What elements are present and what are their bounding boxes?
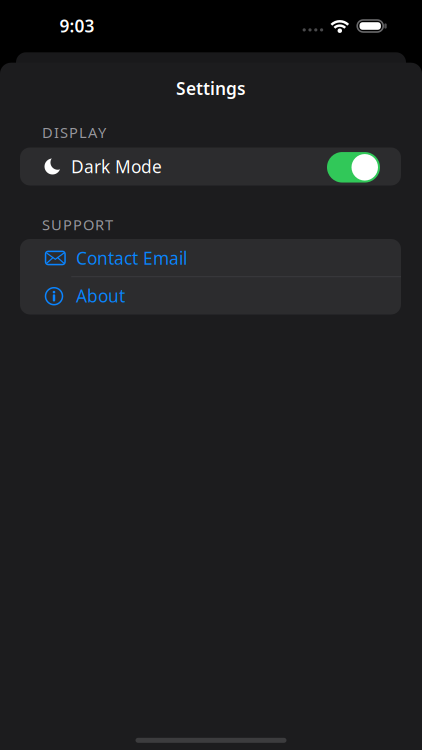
staticText: 9:03 bbox=[59, 14, 94, 37]
button[interactable]: About bbox=[20, 277, 401, 314]
button[interactable]: Contact Email bbox=[20, 239, 401, 277]
staticText: S U P P O R T bbox=[42, 215, 113, 234]
staticText: About bbox=[76, 284, 125, 307]
button[interactable]: Dark Mode bbox=[327, 152, 380, 183]
staticText: Dark Mode bbox=[71, 155, 162, 178]
staticText: D I S P L A Y bbox=[42, 123, 106, 142]
staticText: Settings bbox=[176, 77, 246, 100]
staticText: Contact Email bbox=[76, 246, 187, 269]
